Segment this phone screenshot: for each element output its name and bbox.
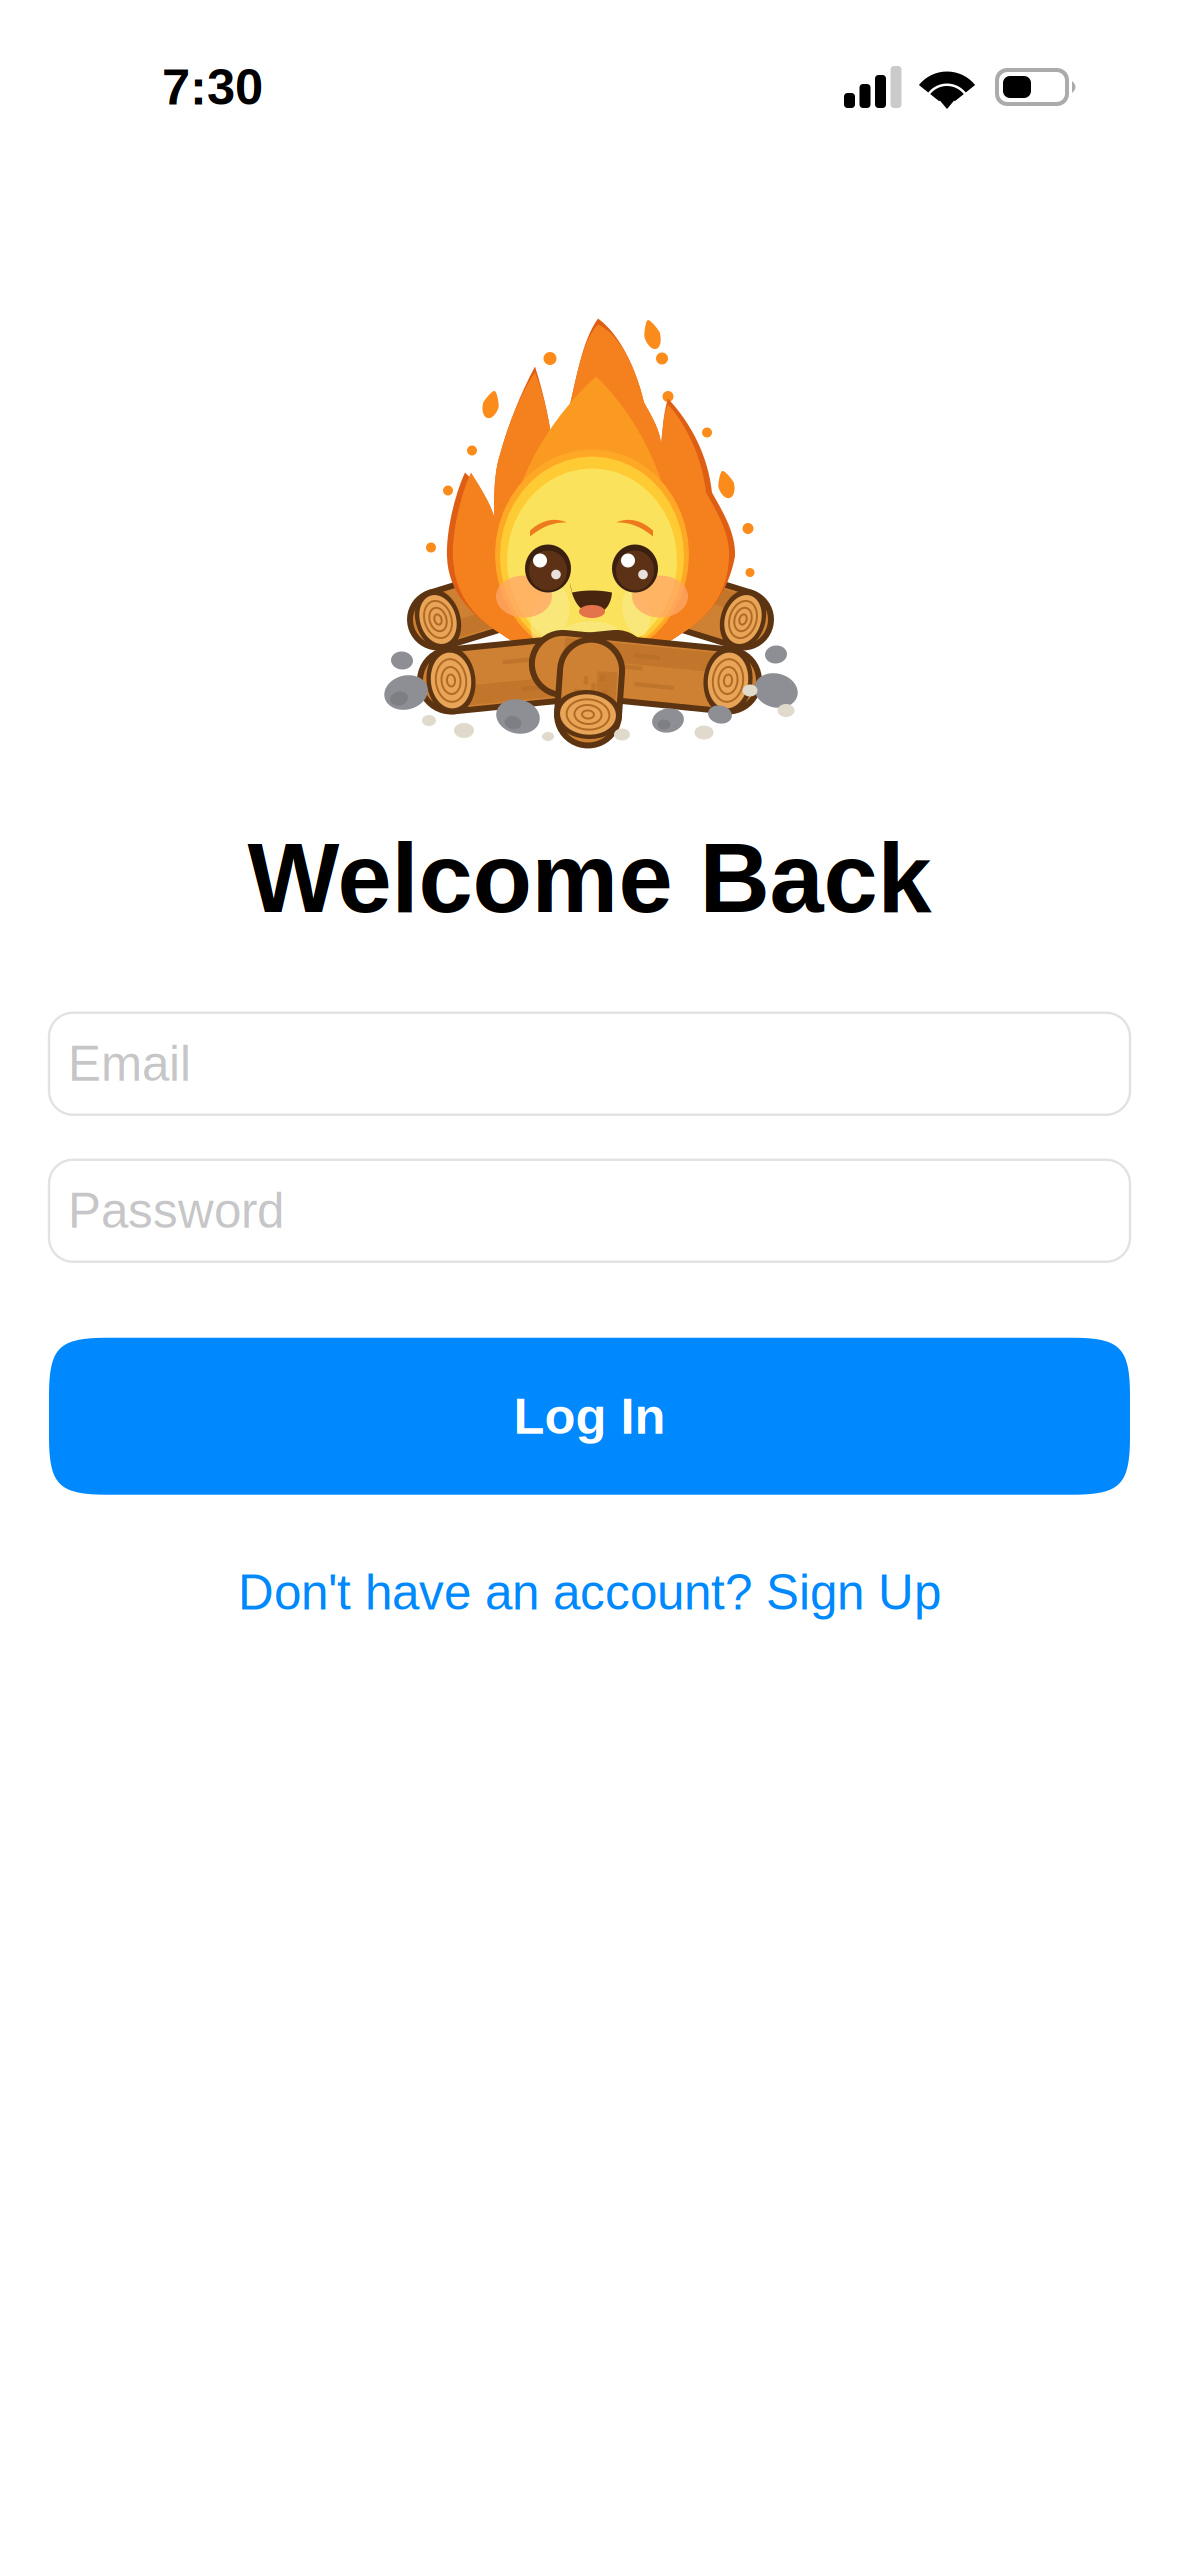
staticText: Welcome Back <box>247 824 931 933</box>
button[interactable]: Don't have an account? Sign Up <box>49 1551 1130 1634</box>
staticText: 7:30 <box>162 59 263 115</box>
staticText: Password <box>68 1183 284 1238</box>
button[interactable]: Password <box>49 1160 1130 1262</box>
staticText: Email <box>68 1036 191 1091</box>
staticText: Log In <box>513 1388 665 1444</box>
button[interactable]: Log In <box>49 1338 1130 1495</box>
staticText: Don't have an account? Sign Up <box>238 1565 941 1620</box>
button[interactable]: Email <box>49 1013 1130 1115</box>
